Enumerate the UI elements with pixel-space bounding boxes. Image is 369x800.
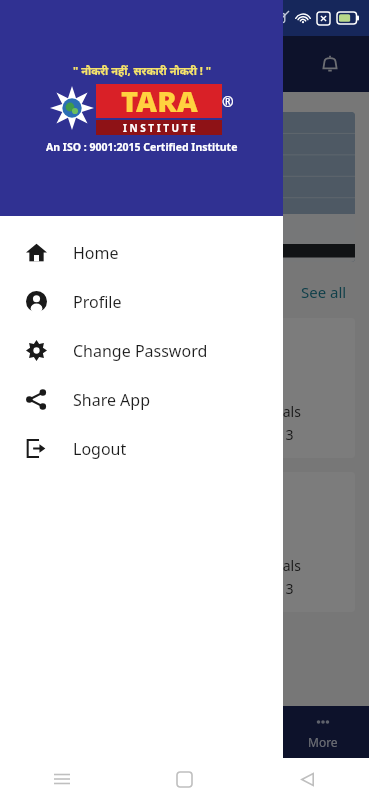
staticText: TARA [121, 81, 198, 120]
staticText: More [308, 734, 338, 750]
staticText: See all [301, 282, 347, 302]
staticText: Study Materials [199, 402, 301, 421]
staticText: " नौकरी नहीं, सरकारी नौकरी ! " [73, 63, 212, 78]
staticText: ® [222, 92, 234, 111]
button[interactable]: Back [246, 758, 369, 800]
button[interactable] [14, 112, 355, 262]
staticText: I N S T I T U T E [123, 121, 196, 135]
button[interactable]: Study Materials [14, 318, 355, 458]
button[interactable]: Logout [0, 424, 283, 473]
button[interactable]: Change Password [0, 326, 283, 375]
button[interactable]: Home [123, 758, 246, 800]
button[interactable]: Notifications [313, 47, 347, 81]
button[interactable]: Share App [0, 375, 283, 424]
button[interactable]: Home [0, 228, 283, 277]
staticText: Share App [73, 389, 151, 411]
staticText: Total Videos: 3 [199, 425, 294, 444]
button[interactable]: Recent apps [0, 758, 123, 800]
staticText: Logout [73, 438, 127, 460]
staticText: Study Materials [199, 556, 301, 575]
button[interactable]: Study Materials [14, 472, 355, 612]
staticText: An ISO : 9001:2015 Certified Institute [46, 140, 238, 154]
button[interactable]: More [277, 706, 369, 758]
staticText: Profile [73, 291, 122, 313]
button[interactable]: See all [297, 278, 351, 306]
staticText: Change Password [73, 340, 208, 362]
staticText: Home [73, 242, 119, 264]
staticText: Total Videos: 3 [199, 579, 294, 598]
button[interactable]: Profile [0, 277, 283, 326]
